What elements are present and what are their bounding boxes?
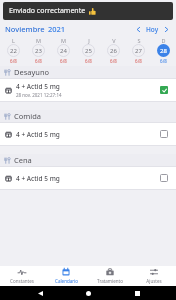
staticText: D [161, 37, 166, 44]
staticText: 4 + Actid 5 mg [16, 82, 60, 91]
button[interactable]: Comida [0, 110, 176, 122]
button[interactable]: 23 [26, 44, 51, 64]
button[interactable]: Enviado correctamente [3, 2, 173, 20]
staticText: S [137, 37, 141, 44]
button[interactable]: 22 [0, 44, 26, 64]
staticText: 6/8 [60, 58, 67, 64]
button[interactable]: Desayuno [0, 66, 176, 78]
staticText: Cena [14, 155, 32, 165]
button[interactable]: Hoy [143, 24, 162, 35]
staticText: M [61, 37, 66, 44]
staticText: 27 [135, 47, 142, 55]
staticText: 6/8 [135, 58, 142, 64]
button[interactable]: Cena [0, 154, 176, 166]
staticText: Enviado correctamente [9, 6, 86, 16]
staticText: 26 [110, 47, 117, 55]
staticText: 6/8 [35, 58, 42, 64]
button[interactable]: Ajustes [132, 266, 176, 286]
staticText: Comida [14, 111, 42, 121]
staticText: Noviembre [5, 24, 45, 34]
button[interactable]: Inicio [79, 286, 97, 300]
staticText: 25 [85, 47, 92, 55]
staticText: J [88, 37, 90, 44]
button[interactable]: 27 [126, 44, 151, 64]
staticText: Hoy [146, 25, 159, 34]
staticText: 2021 [48, 24, 66, 34]
button[interactable]: Calendario [44, 266, 88, 286]
button[interactable]: 4 + Actid 5 mg [0, 167, 176, 189]
button[interactable]: Marcado [157, 83, 171, 97]
staticText: 6/8 [110, 58, 117, 64]
button[interactable]: 26 [101, 44, 126, 64]
button[interactable]: 28 [151, 44, 176, 64]
staticText: V [112, 37, 116, 44]
staticText: 4 + Actid 5 mg [16, 174, 60, 183]
button[interactable]: Recientes [128, 286, 146, 300]
staticText: 23 [35, 47, 42, 55]
button[interactable]: Mes siguiente [162, 23, 171, 35]
staticText: Constantes [10, 278, 34, 284]
staticText: Calendario [55, 278, 78, 284]
button[interactable]: Tratamiento [88, 266, 132, 286]
staticText: M [36, 37, 41, 44]
button[interactable]: Marcar [157, 127, 171, 141]
button[interactable]: 4 + Actid 5 mg [0, 123, 176, 145]
staticText: 24 [60, 47, 67, 55]
staticText: 6/8 [10, 58, 17, 64]
staticText: 6/8 [85, 58, 92, 64]
button[interactable]: 25 [76, 44, 101, 64]
staticText: 6/8 [160, 58, 167, 64]
staticText: Desayuno [14, 67, 50, 77]
staticText: 4 + Actid 5 mg [16, 130, 60, 139]
staticText: 28 nov. 2021 12:27:14 [16, 92, 62, 98]
staticText: 22 [10, 47, 17, 55]
button[interactable]: 4 + Actid 5 mg [0, 79, 176, 101]
staticText: L [12, 37, 15, 44]
staticText: Tratamiento [97, 278, 123, 284]
button[interactable]: Atrás [31, 286, 49, 300]
staticText: 28 [160, 47, 167, 55]
button[interactable]: Marcar [157, 171, 171, 185]
staticText: Ajustes [146, 278, 162, 284]
button[interactable]: 24 [51, 44, 76, 64]
button[interactable]: Mes anterior [134, 23, 143, 35]
button[interactable]: Constantes [0, 266, 44, 286]
